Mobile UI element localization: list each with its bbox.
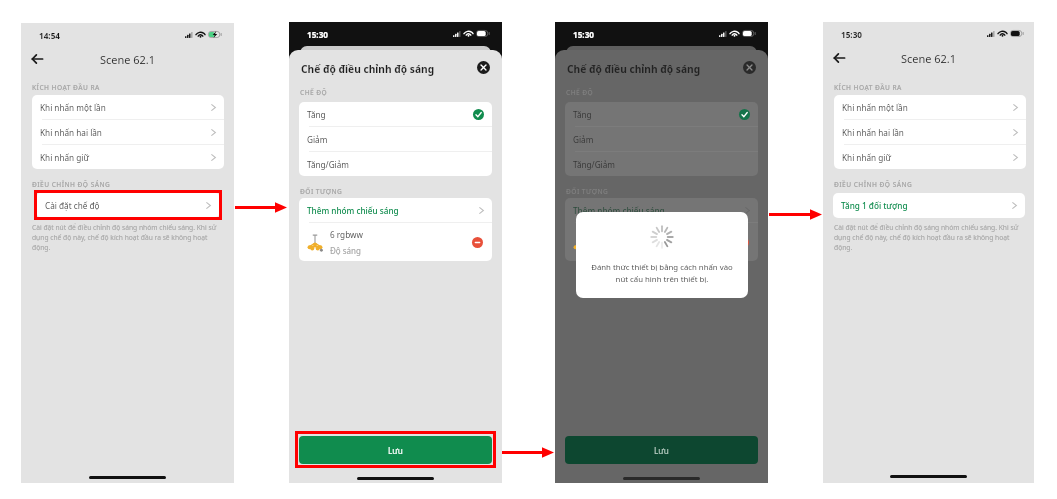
button[interactable]: Tăng 1 đối tượng	[833, 193, 1025, 218]
button[interactable]: Khi nhấn hai lần	[32, 120, 224, 144]
staticText: Khi nhấn giữ	[40, 152, 211, 163]
staticText: 15:30	[573, 29, 595, 40]
staticText: Khi nhấn một lần	[842, 102, 1013, 113]
staticText: KÍCH HOẠT ĐẦU RA	[834, 83, 902, 92]
staticText: Tăng/Giảm	[307, 159, 484, 170]
staticText: Đánh thức thiết bị bằng cách nhấn vào nú…	[585, 262, 739, 285]
staticText: 14:54	[39, 30, 61, 41]
staticText: Khi nhấn giữ	[842, 152, 1013, 163]
staticText: CHẾ ĐỘ	[300, 88, 328, 97]
staticText: Cài đặt nút để điều chỉnh độ sáng nhóm c…	[32, 223, 225, 252]
button[interactable]: Khi nhấn một lần	[32, 95, 224, 119]
button[interactable]: Thêm nhóm chiếu sáng	[299, 198, 492, 222]
button[interactable]: Khi nhấn một lần	[834, 95, 1026, 119]
staticText: ĐỐI TƯỢNG	[566, 187, 609, 196]
staticText: Khi nhấn hai lần	[842, 127, 1013, 138]
staticText: Khi nhấn hai lần	[40, 127, 211, 138]
button[interactable]: 6 rgbww	[299, 223, 492, 261]
button[interactable]: Khi nhấn giữ	[834, 145, 1026, 169]
staticText: 15:30	[307, 29, 329, 40]
button[interactable]: Khi nhấn giữ	[32, 145, 224, 169]
button[interactable]: 6 rgbww	[565, 223, 758, 261]
staticText: Lưu	[388, 445, 403, 456]
staticText: Thêm nhóm chiếu sáng	[307, 205, 479, 216]
button[interactable]: Thêm nhóm chiếu sáng	[565, 198, 758, 222]
staticText: ĐỐI TƯỢNG	[300, 187, 343, 196]
button[interactable]: Giảm	[565, 127, 758, 151]
staticText: Tăng/Giảm	[573, 159, 750, 170]
button[interactable]: Close	[476, 60, 491, 75]
button[interactable]: Back	[830, 49, 848, 67]
staticText: Tăng	[307, 109, 473, 120]
button[interactable]: Lưu	[565, 436, 758, 464]
staticText: Tăng 1 đối tượng	[841, 200, 1012, 211]
staticText: 6 rgbww	[330, 229, 363, 240]
button[interactable]: Tăng	[565, 102, 758, 126]
staticText: 15:30	[841, 29, 863, 40]
staticText: Scene 62.1	[823, 51, 1034, 66]
staticText: Khi nhấn một lần	[40, 102, 211, 113]
button[interactable]: Cài đặt chế độ	[37, 193, 219, 217]
staticText: Scene 62.1	[21, 52, 234, 67]
staticText: ĐIỀU CHỈNH ĐỘ SÁNG	[834, 180, 913, 189]
staticText: Độ sáng	[330, 245, 361, 256]
button[interactable]: Giảm	[299, 127, 492, 151]
button[interactable]: Tăng	[299, 102, 492, 126]
staticText: Giảm	[573, 134, 750, 145]
staticText: Cài đặt chế độ	[45, 200, 206, 211]
staticText: ĐIỀU CHỈNH ĐỘ SÁNG	[32, 180, 111, 189]
staticText: CHẾ ĐỘ	[566, 88, 594, 97]
staticText: Chế độ điều chỉnh độ sáng	[567, 62, 701, 76]
staticText: Cài đặt nút để điều chỉnh độ sáng nhóm c…	[834, 223, 1027, 252]
button[interactable]: Close	[742, 60, 757, 75]
staticText: Giảm	[307, 134, 484, 145]
button[interactable]: Tăng/Giảm	[299, 152, 492, 176]
staticText: Chế độ điều chỉnh độ sáng	[301, 62, 435, 76]
button[interactable]: Khi nhấn hai lần	[834, 120, 1026, 144]
button[interactable]: Lưu	[299, 436, 492, 464]
staticText: KÍCH HOẠT ĐẦU RA	[32, 83, 100, 92]
staticText: Tăng	[573, 109, 739, 120]
button[interactable]: Back	[28, 50, 46, 68]
staticText: Lưu	[654, 445, 669, 456]
button[interactable]: Tăng/Giảm	[565, 152, 758, 176]
staticText: Thêm nhóm chiếu sáng	[573, 205, 745, 216]
